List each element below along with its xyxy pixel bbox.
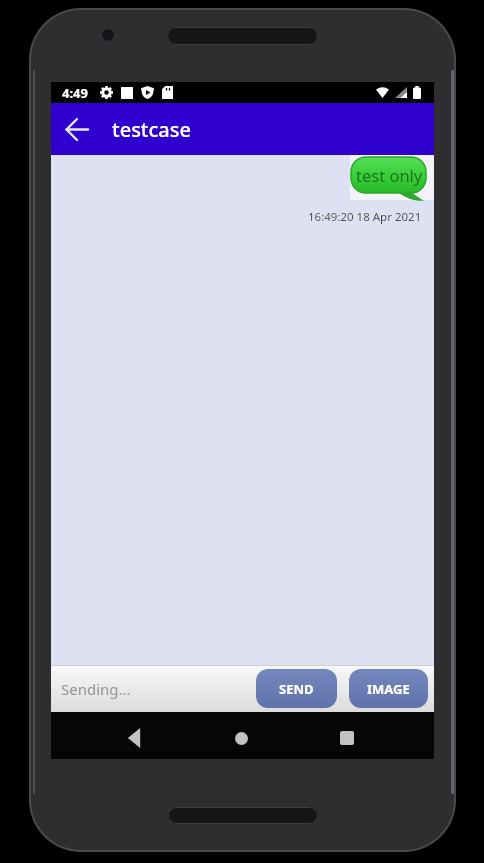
button[interactable] [120, 726, 148, 750]
button[interactable] [228, 725, 254, 751]
staticText: test only [356, 164, 423, 186]
button[interactable] [334, 725, 360, 751]
button[interactable] [57, 109, 97, 149]
staticText: Sending... [61, 679, 131, 699]
staticText: SEND [279, 680, 314, 698]
staticText: 16:49:20 18 Apr 2021 [308, 209, 422, 225]
staticText: testcase [112, 116, 191, 143]
button[interactable]: Sending... [51, 665, 251, 712]
button[interactable]: IMAGE [349, 669, 428, 708]
staticText: 4:49 [62, 84, 88, 102]
button[interactable]: SEND [256, 669, 337, 708]
staticText: IMAGE [367, 680, 410, 698]
button[interactable]: test only [350, 155, 434, 203]
